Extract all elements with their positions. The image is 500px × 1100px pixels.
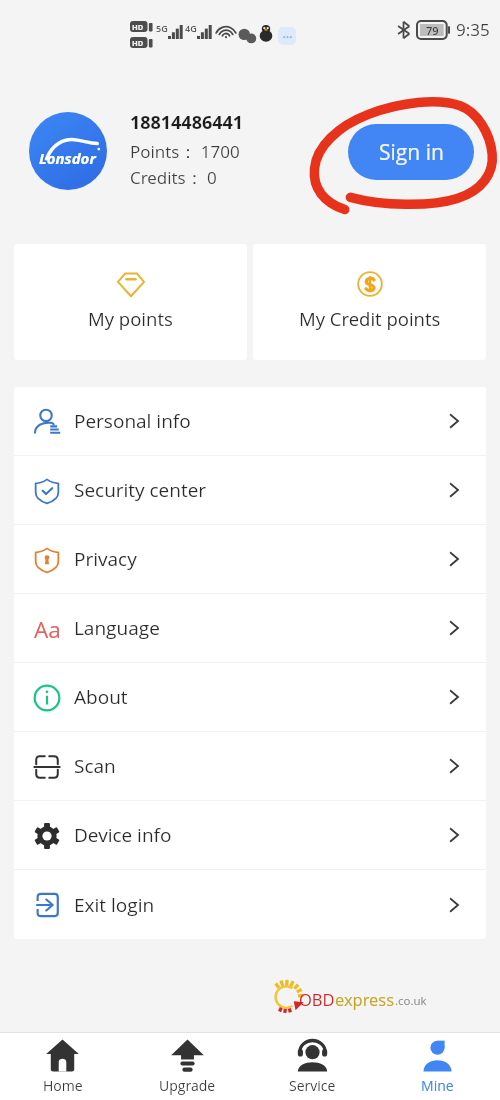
staticText: Scan [74,753,116,779]
staticText: Home [43,1076,83,1095]
staticText: Security center [74,477,207,503]
staticText: About [74,684,128,710]
staticText: Service [289,1076,336,1095]
staticText: HD [132,38,144,48]
staticText: 9:35 [456,18,490,41]
button[interactable]: Aa [14,594,486,662]
button[interactable]: My Credit points [253,244,486,360]
staticText: 5G [156,22,168,34]
button[interactable]: Sign in [348,124,474,180]
button[interactable]: About [14,663,486,731]
button[interactable]: Service [250,1033,375,1100]
button[interactable]: Device info [14,801,486,869]
button[interactable]: Personal info [14,387,486,455]
staticText: Mine [421,1076,454,1095]
button[interactable]: Privacy [14,525,486,593]
staticText: Device info [74,822,172,848]
button[interactable]: Home [0,1033,125,1100]
staticText: 4G [185,22,197,34]
staticText: My Credit points [299,306,441,331]
staticText: Aa [34,614,61,643]
button[interactable]: Scan [14,732,486,800]
staticText: express [335,988,395,1010]
staticText: 18814486441 [130,110,244,135]
button[interactable]: Mine [375,1033,500,1100]
staticText: 79 [426,23,439,38]
staticText: Upgrade [159,1076,216,1095]
staticText: Privacy [74,546,137,572]
staticText: Sign in [379,138,444,167]
staticText: .co.uk [395,993,427,1009]
staticText: Lonsdor [39,148,96,168]
staticText: Personal info [74,408,191,434]
staticText: OBD [299,988,335,1010]
staticText: Exit login [74,892,155,918]
button[interactable]: My points [14,244,247,360]
staticText: HD [132,22,144,32]
staticText: My points [88,306,173,331]
button[interactable]: Exit login [14,870,486,939]
staticText: Points： 1700 [130,140,240,163]
button[interactable]: Upgrade [125,1033,250,1100]
staticText: Language [74,615,160,641]
button[interactable]: Security center [14,456,486,524]
staticText: Credits： 0 [130,166,217,189]
